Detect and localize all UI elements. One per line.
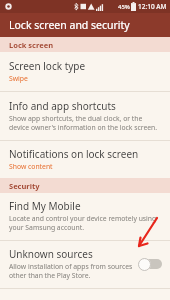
button[interactable]: Find My Mobile xyxy=(0,193,170,240)
button[interactable]: Unknown sources toggle, off xyxy=(138,257,164,271)
button[interactable]: Screen lock type xyxy=(0,52,170,91)
staticText: Screen lock type xyxy=(9,59,86,73)
button[interactable]: Info and app shortcuts xyxy=(0,92,170,140)
staticText: Locate and control your device remotely … xyxy=(9,214,164,232)
staticText: Find My Mobile xyxy=(9,199,81,213)
button[interactable]: Unknown sources xyxy=(0,241,170,288)
staticText: Notifications on lock screen xyxy=(9,147,139,161)
staticText: Lock screen and security xyxy=(9,18,130,32)
staticText: 45% xyxy=(118,3,130,11)
staticText: Allow installation of apps from sources … xyxy=(9,262,134,280)
staticText: Show content xyxy=(9,162,53,171)
staticText: Unknown sources xyxy=(9,247,93,261)
staticText: Info and app shortcuts xyxy=(9,99,116,113)
staticText: 12:10 AM xyxy=(138,2,167,11)
staticText: Security xyxy=(9,181,40,191)
button[interactable]: Notifications on lock screen xyxy=(0,141,170,178)
staticText: Show app shortcuts, the dual clock, or t… xyxy=(9,114,164,132)
staticText: Swipe xyxy=(9,74,28,83)
staticText: Lock screen xyxy=(9,40,54,50)
